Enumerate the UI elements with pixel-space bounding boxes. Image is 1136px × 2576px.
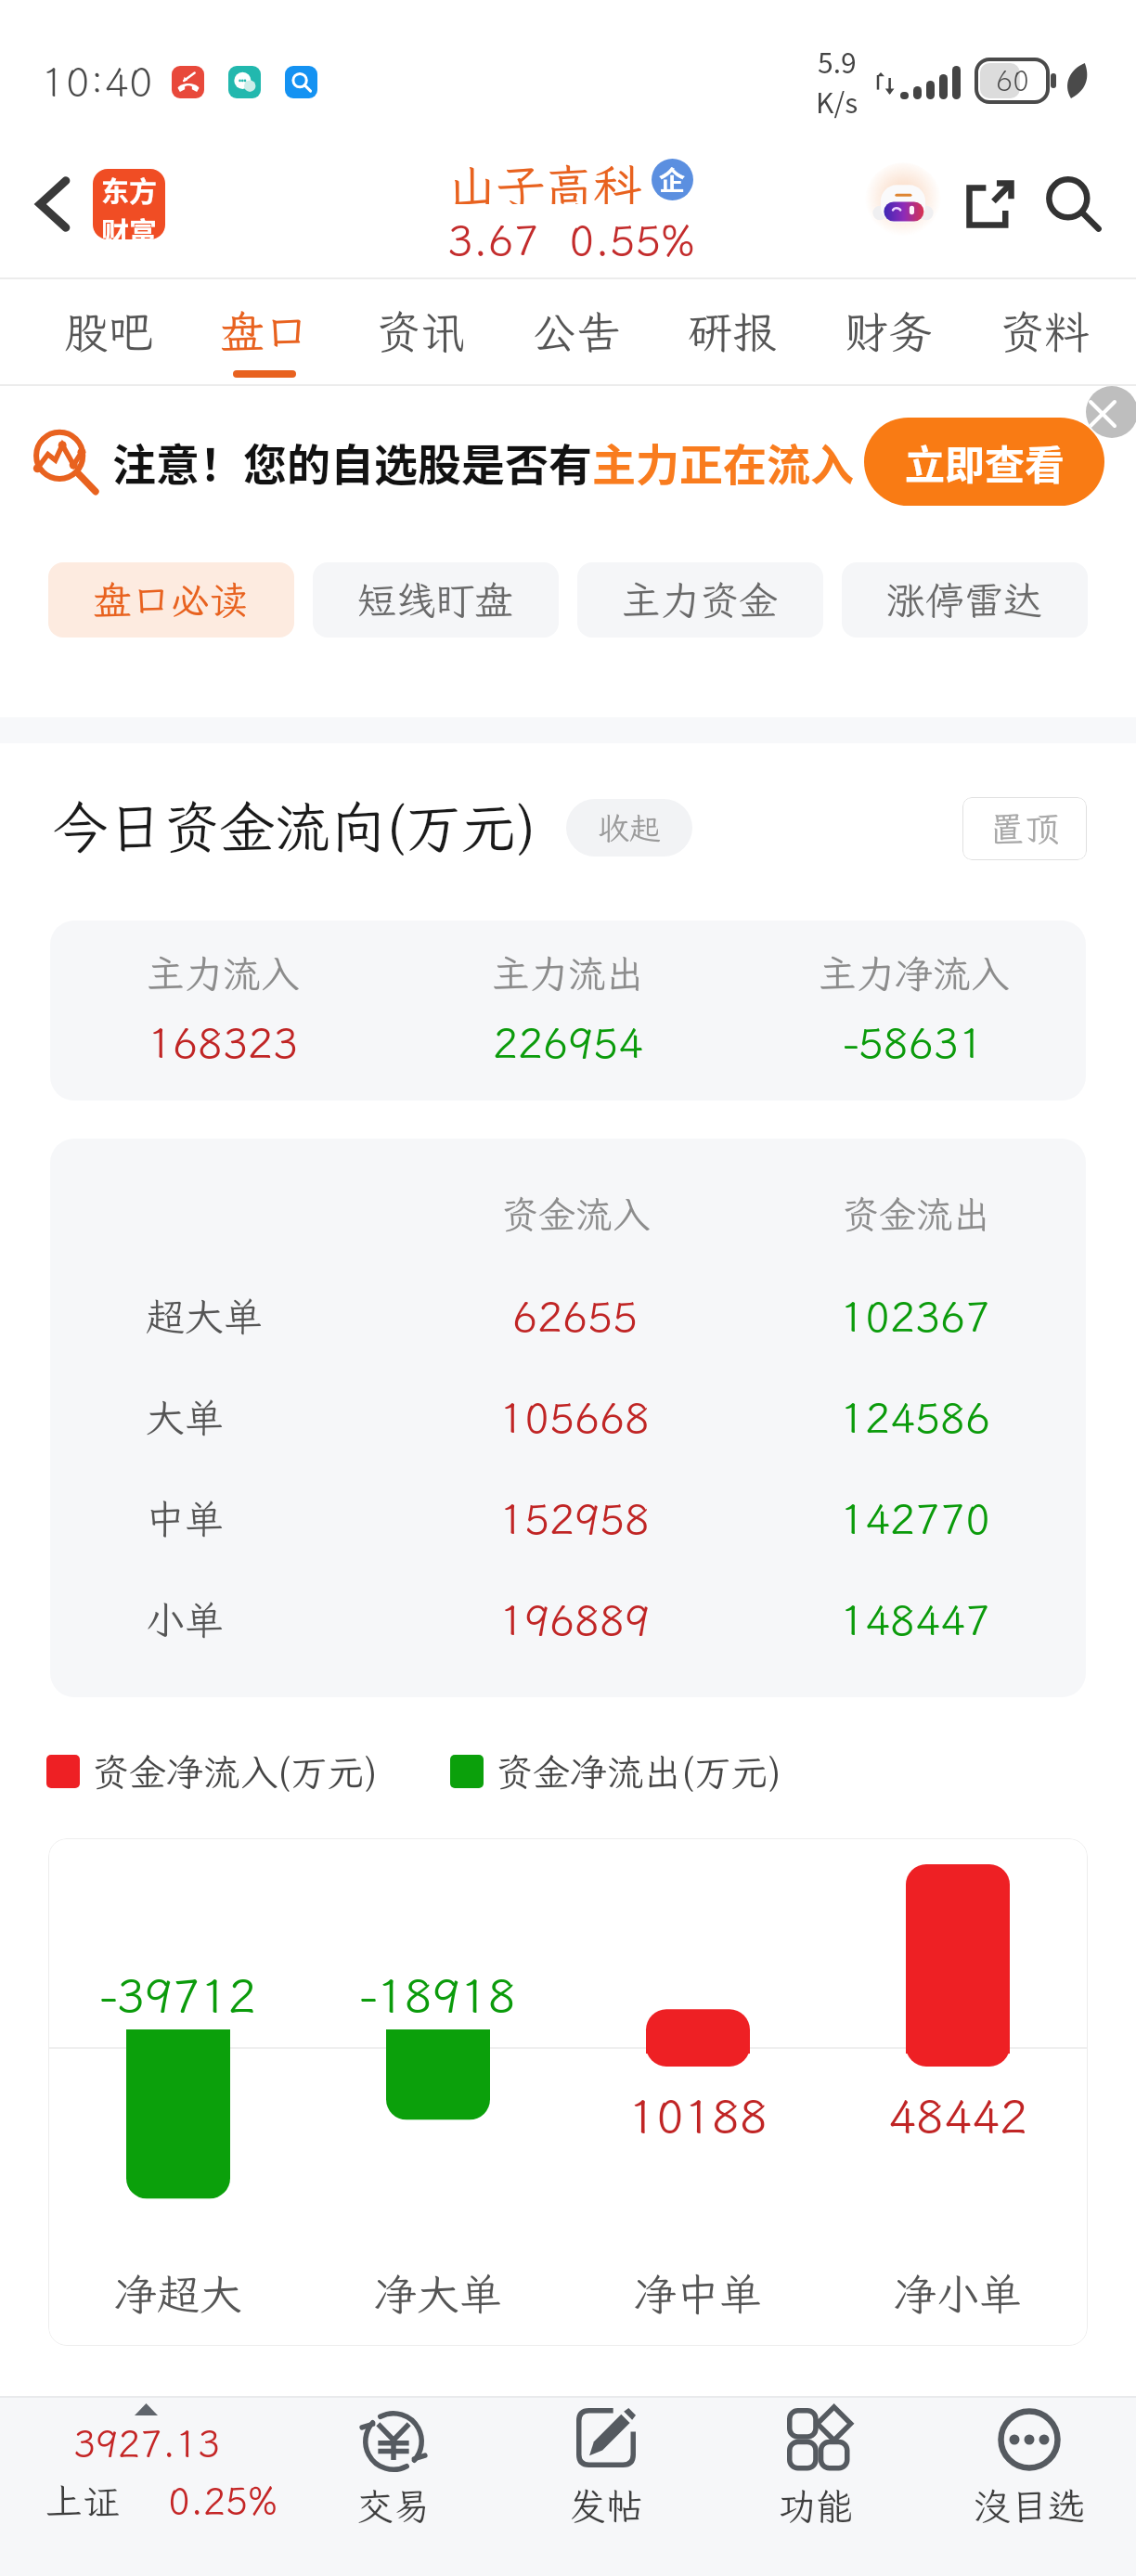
staticText: 152958 (499, 1491, 651, 1546)
staticText: K/s (816, 81, 858, 121)
staticText: 公告 (532, 302, 622, 360)
staticText: 大单 (146, 1392, 225, 1443)
staticText: 山子高科 (448, 154, 642, 204)
button[interactable]: 收起 (566, 799, 692, 857)
button[interactable]: 交易 (291, 2396, 496, 2576)
staticText: 0.25% (168, 2477, 278, 2526)
button[interactable]: Search (1034, 164, 1114, 244)
staticText: 资金净流出(万元) (496, 1747, 781, 1797)
staticText: 资金流入 (501, 1190, 650, 1239)
staticText: 股吧 (64, 302, 154, 360)
button[interactable]: 没目选 (927, 2396, 1131, 2576)
staticText: 资讯 (376, 302, 466, 360)
staticText: -18918 (360, 1964, 516, 2025)
staticText: 168323 (148, 1015, 299, 1070)
staticText: 主力净流入 (819, 948, 1009, 998)
button[interactable]: 短线盯盘 (313, 562, 559, 638)
staticText: 主力正在流入 (592, 430, 854, 493)
button[interactable]: 研报 (654, 277, 810, 386)
staticText: -58631 (844, 1015, 984, 1070)
staticText: -39712 (100, 1964, 256, 2025)
staticText: 3927.13 (73, 2419, 220, 2468)
staticText: 小单 (146, 1594, 225, 1645)
button[interactable]: 3927.13 (0, 2396, 316, 2576)
staticText: 中单 (146, 1493, 225, 1544)
staticText: 105668 (499, 1390, 651, 1445)
button[interactable]: 功能 (714, 2396, 918, 2576)
staticText: 主力资金 (622, 574, 779, 625)
staticText: 10:40 (41, 55, 153, 109)
staticText: 财富 (101, 210, 157, 239)
staticText: 124586 (840, 1390, 991, 1445)
button[interactable]: 主力资金 (577, 562, 823, 638)
button[interactable]: 盘口 (187, 277, 342, 386)
button[interactable]: 立即查看 (864, 418, 1104, 506)
staticText: 5.9 (818, 41, 857, 81)
button[interactable]: 财务 (810, 277, 966, 386)
staticText: 注意！您的自选股是否有 (112, 430, 592, 493)
staticText: 没目选 (974, 2481, 1085, 2531)
staticText: 196889 (499, 1592, 651, 1647)
button[interactable]: Share (950, 164, 1030, 244)
button[interactable]: 置顶 (962, 797, 1087, 860)
staticText: 48442 (888, 2084, 1027, 2145)
staticText: 资金流出 (842, 1190, 990, 1239)
staticText: 148447 (840, 1592, 991, 1647)
staticText: 研报 (688, 302, 778, 360)
staticText: 净中单 (634, 2266, 762, 2323)
staticText: 发帖 (569, 2481, 643, 2531)
staticText: 60 (996, 62, 1029, 99)
staticText: 净大单 (374, 2266, 502, 2323)
button[interactable]: 股吧 (31, 277, 187, 386)
staticText: 资料 (1000, 302, 1090, 360)
staticText: 企 (659, 161, 686, 199)
staticText: 净超大 (114, 2266, 242, 2323)
staticText: 功能 (779, 2481, 853, 2531)
button[interactable]: Close banner (1086, 386, 1136, 438)
staticText: 收起 (598, 807, 661, 849)
staticText: 上证 (45, 2477, 120, 2526)
button[interactable]: 公告 (498, 277, 654, 386)
button[interactable]: 发帖 (504, 2396, 708, 2576)
staticText: 盘口 (220, 302, 310, 360)
staticText: 102367 (840, 1289, 991, 1344)
button[interactable]: East Money home (93, 169, 165, 239)
staticText: 超大单 (146, 1291, 264, 1342)
staticText: 短线盯盘 (357, 574, 514, 625)
button[interactable]: 涨停雷达 (842, 562, 1088, 638)
staticText: 226954 (493, 1015, 644, 1070)
staticText: 10188 (628, 2084, 768, 2145)
button[interactable]: AI assistant (861, 162, 945, 246)
button[interactable]: 资料 (966, 277, 1122, 386)
staticText: 主力流出 (492, 948, 644, 998)
staticText: 置顶 (989, 805, 1061, 852)
staticText: 立即查看 (905, 433, 1065, 491)
staticText: 今日资金流向(万元) (52, 790, 536, 863)
staticText: 交易 (356, 2481, 431, 2531)
staticText: 资金净流入(万元) (92, 1747, 378, 1797)
staticText: 财务 (844, 302, 934, 360)
staticText: 142770 (840, 1491, 991, 1546)
staticText: 东方 (101, 169, 157, 209)
staticText: 净小单 (894, 2266, 1022, 2323)
staticText: 62655 (512, 1289, 639, 1344)
staticText: 盘口必读 (93, 574, 250, 625)
staticText: 主力流入 (147, 948, 299, 998)
button[interactable]: 资讯 (342, 277, 498, 386)
button[interactable]: 盘口必读 (48, 562, 294, 638)
staticText: 3.67 0.55% (447, 212, 695, 265)
button[interactable]: Back (19, 139, 89, 269)
staticText: 涨停雷达 (886, 574, 1043, 625)
